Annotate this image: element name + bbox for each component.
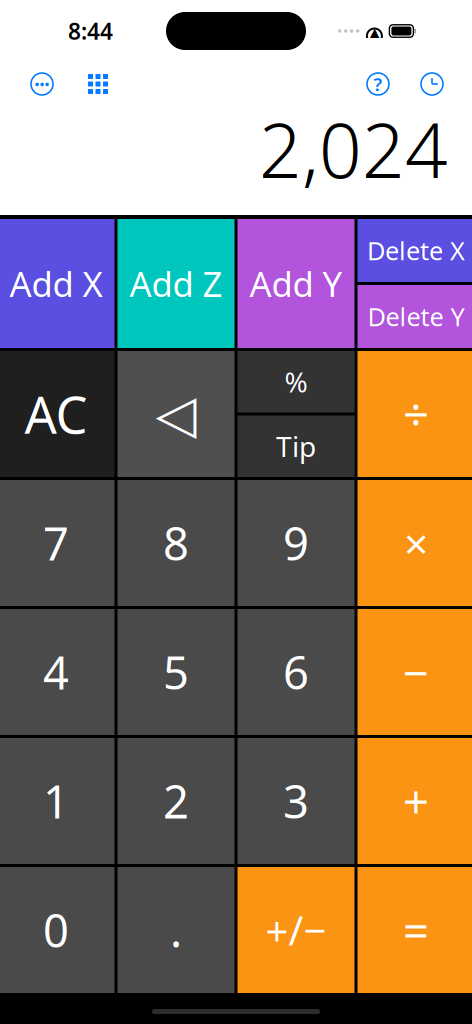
staticText: 2,024 [259, 99, 448, 199]
staticText: 5 [163, 642, 189, 702]
button[interactable]: 2 [117, 738, 234, 864]
button[interactable]: Help [360, 66, 396, 102]
button[interactable]: ÷ [357, 351, 472, 477]
button[interactable]: 3 [237, 738, 354, 864]
button[interactable]: Tip [237, 415, 354, 477]
staticText: + [403, 771, 429, 831]
button[interactable]: Add X [0, 219, 114, 348]
button[interactable]: 9 [237, 480, 354, 606]
staticText: Delete Y [367, 300, 464, 333]
staticText: 0 [43, 900, 69, 960]
staticText: 1 [43, 771, 69, 831]
staticText: % [284, 363, 307, 400]
staticText: ◁ [155, 384, 196, 444]
staticText: 7 [43, 513, 69, 573]
staticText: ? [373, 72, 382, 96]
button[interactable]: AC [0, 351, 114, 477]
button[interactable]: More options [24, 66, 60, 102]
button[interactable]: % [237, 351, 354, 412]
button[interactable]: 1 [0, 738, 114, 864]
staticText: ▲ [369, 25, 380, 41]
button[interactable]: − [357, 609, 472, 735]
button[interactable]: 6 [237, 609, 354, 735]
button[interactable]: 7 [0, 480, 114, 606]
staticText: AC [24, 380, 87, 448]
staticText: Add X [9, 260, 102, 306]
staticText: Tip [276, 428, 316, 465]
staticText: +/− [265, 903, 326, 956]
staticText: Add Y [249, 260, 342, 306]
staticText: ••• [34, 75, 49, 93]
button[interactable]: . [117, 867, 234, 993]
staticText: = [403, 900, 429, 960]
button[interactable]: 4 [0, 609, 114, 735]
staticText: 9 [283, 513, 309, 573]
button[interactable]: Add Y [237, 219, 354, 348]
staticText: − [403, 642, 429, 702]
button[interactable]: = [357, 867, 472, 993]
button[interactable]: Add Z [117, 219, 234, 348]
staticText: 3 [283, 771, 309, 831]
staticText: . [170, 900, 182, 960]
staticText: ÷ [403, 384, 429, 444]
button[interactable]: 5 [117, 609, 234, 735]
button[interactable]: Keypad [80, 66, 116, 102]
staticText: 2 [163, 771, 189, 831]
staticText: 8 [163, 513, 189, 573]
button[interactable]: Delete X [357, 219, 472, 282]
button[interactable]: + [357, 738, 472, 864]
staticText: 8:44 [68, 16, 113, 46]
button[interactable]: 0 [0, 867, 114, 993]
staticText: Delete X [367, 234, 465, 267]
button[interactable]: +/− [237, 867, 354, 993]
button[interactable]: History [414, 66, 450, 102]
button[interactable]: Backspace [117, 351, 234, 477]
button[interactable]: 8 [117, 480, 234, 606]
staticText: 4 [43, 642, 69, 702]
staticText: × [404, 515, 428, 571]
button[interactable]: × [357, 480, 472, 606]
staticText: Add Z [129, 260, 222, 306]
staticText: 6 [283, 642, 309, 702]
button[interactable]: Delete Y [357, 285, 472, 348]
